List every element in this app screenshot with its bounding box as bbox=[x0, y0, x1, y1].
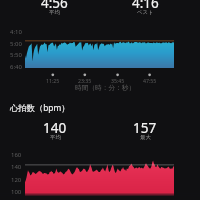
staticText: 最大 bbox=[140, 134, 151, 141]
staticText: 160 bbox=[11, 151, 22, 159]
staticText: 140 bbox=[43, 119, 67, 137]
staticText: 時間（時：分：秒） bbox=[75, 84, 136, 92]
staticText: 4:10 bbox=[10, 28, 22, 36]
staticText: 11:25 bbox=[46, 77, 60, 84]
staticText: 47:55 bbox=[143, 77, 157, 84]
staticText: 35:45 bbox=[111, 77, 125, 84]
staticText: 4:56 bbox=[41, 0, 68, 12]
staticText: 4:16 bbox=[132, 0, 159, 12]
staticText: 120 bbox=[11, 176, 22, 184]
staticText: 平均 bbox=[50, 134, 61, 141]
staticText: 100 bbox=[11, 188, 22, 196]
staticText: 5:50 bbox=[10, 51, 22, 59]
staticText: 心拍数（bpm） bbox=[10, 102, 70, 113]
staticText: 157 bbox=[133, 119, 157, 137]
staticText: 6:40 bbox=[10, 63, 22, 71]
staticText: 5:00 bbox=[10, 40, 22, 48]
staticText: 平均 bbox=[49, 9, 60, 16]
staticText: 23:35 bbox=[78, 77, 92, 84]
staticText: ベスト bbox=[137, 9, 154, 16]
staticText: 140 bbox=[11, 163, 22, 171]
